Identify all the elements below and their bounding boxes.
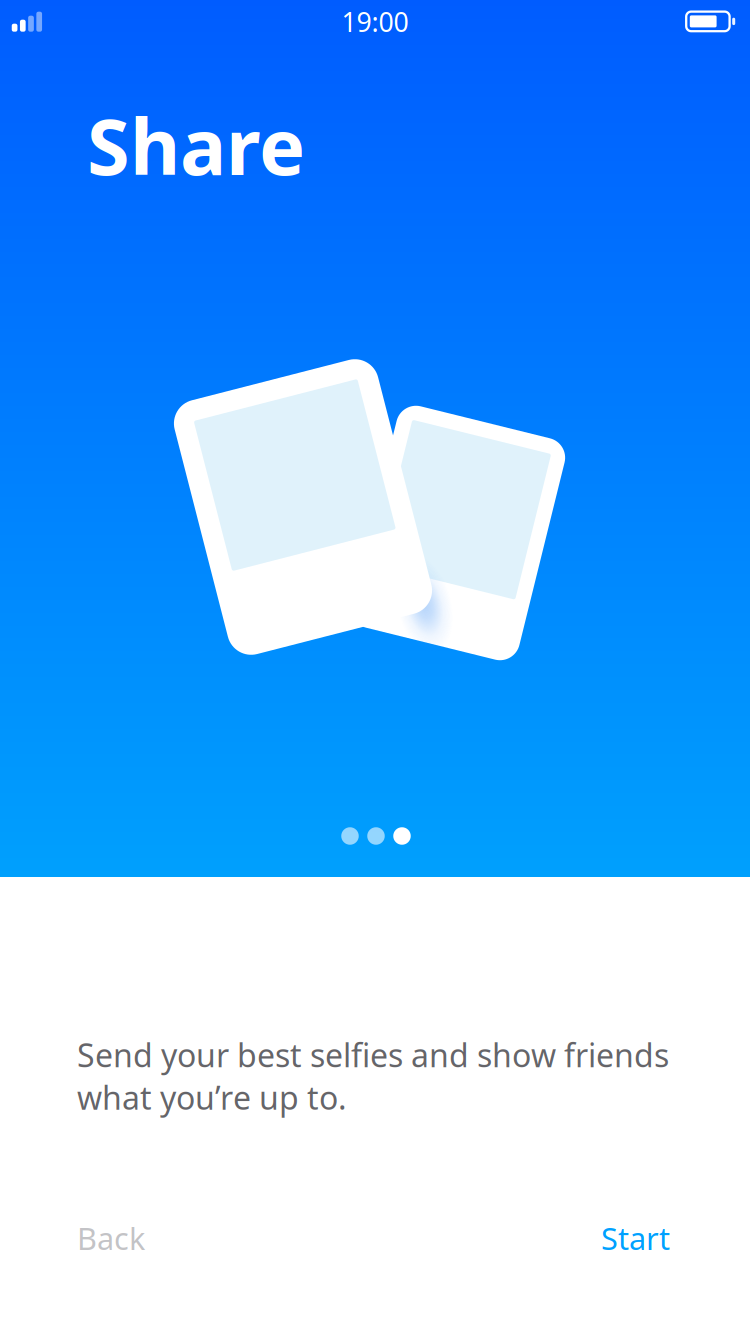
button[interactable]: Start (520, 1202, 670, 1274)
staticText: Send your best selfies and show friends … (77, 1033, 669, 1118)
staticText: Back (77, 1218, 145, 1258)
staticText: Share (87, 94, 305, 196)
staticText: Start (601, 1218, 670, 1258)
button[interactable]: Back (77, 1202, 227, 1274)
staticText: 19:00 (341, 4, 408, 39)
